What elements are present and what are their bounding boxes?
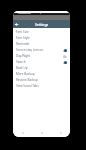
staticText: Screen stay turn on (16, 48, 44, 52)
button[interactable]: Back (14, 22, 19, 27)
staticText: Day/Night (16, 54, 31, 58)
button[interactable]: More Backup (13, 71, 70, 77)
button[interactable]: View Social Tabs (13, 83, 70, 89)
button[interactable]: Font Size (13, 29, 70, 35)
button[interactable]: Home (32, 130, 51, 137)
staticText: Back Up (16, 66, 28, 70)
button[interactable]: Recents (51, 130, 70, 137)
staticText: More Backup (16, 72, 35, 76)
button[interactable]: Reminder (13, 41, 70, 47)
button[interactable]: Screen stay turn on (13, 47, 70, 53)
button[interactable]: Font Style (13, 35, 70, 41)
staticText: Search (16, 60, 26, 64)
staticText: Reminder (16, 42, 30, 46)
staticText: Font Size (16, 30, 29, 34)
button[interactable]: Restore Backup (13, 77, 70, 83)
staticText: View Social Tabs (16, 84, 39, 88)
button[interactable]: Day/Night (13, 53, 70, 59)
staticText: Settings (35, 22, 49, 27)
button[interactable]: Back Up (13, 65, 70, 71)
staticText: Restore Backup (16, 78, 38, 82)
staticText: Font Style (16, 36, 30, 40)
button[interactable]: Search (13, 59, 70, 65)
button[interactable]: Back (13, 130, 32, 137)
